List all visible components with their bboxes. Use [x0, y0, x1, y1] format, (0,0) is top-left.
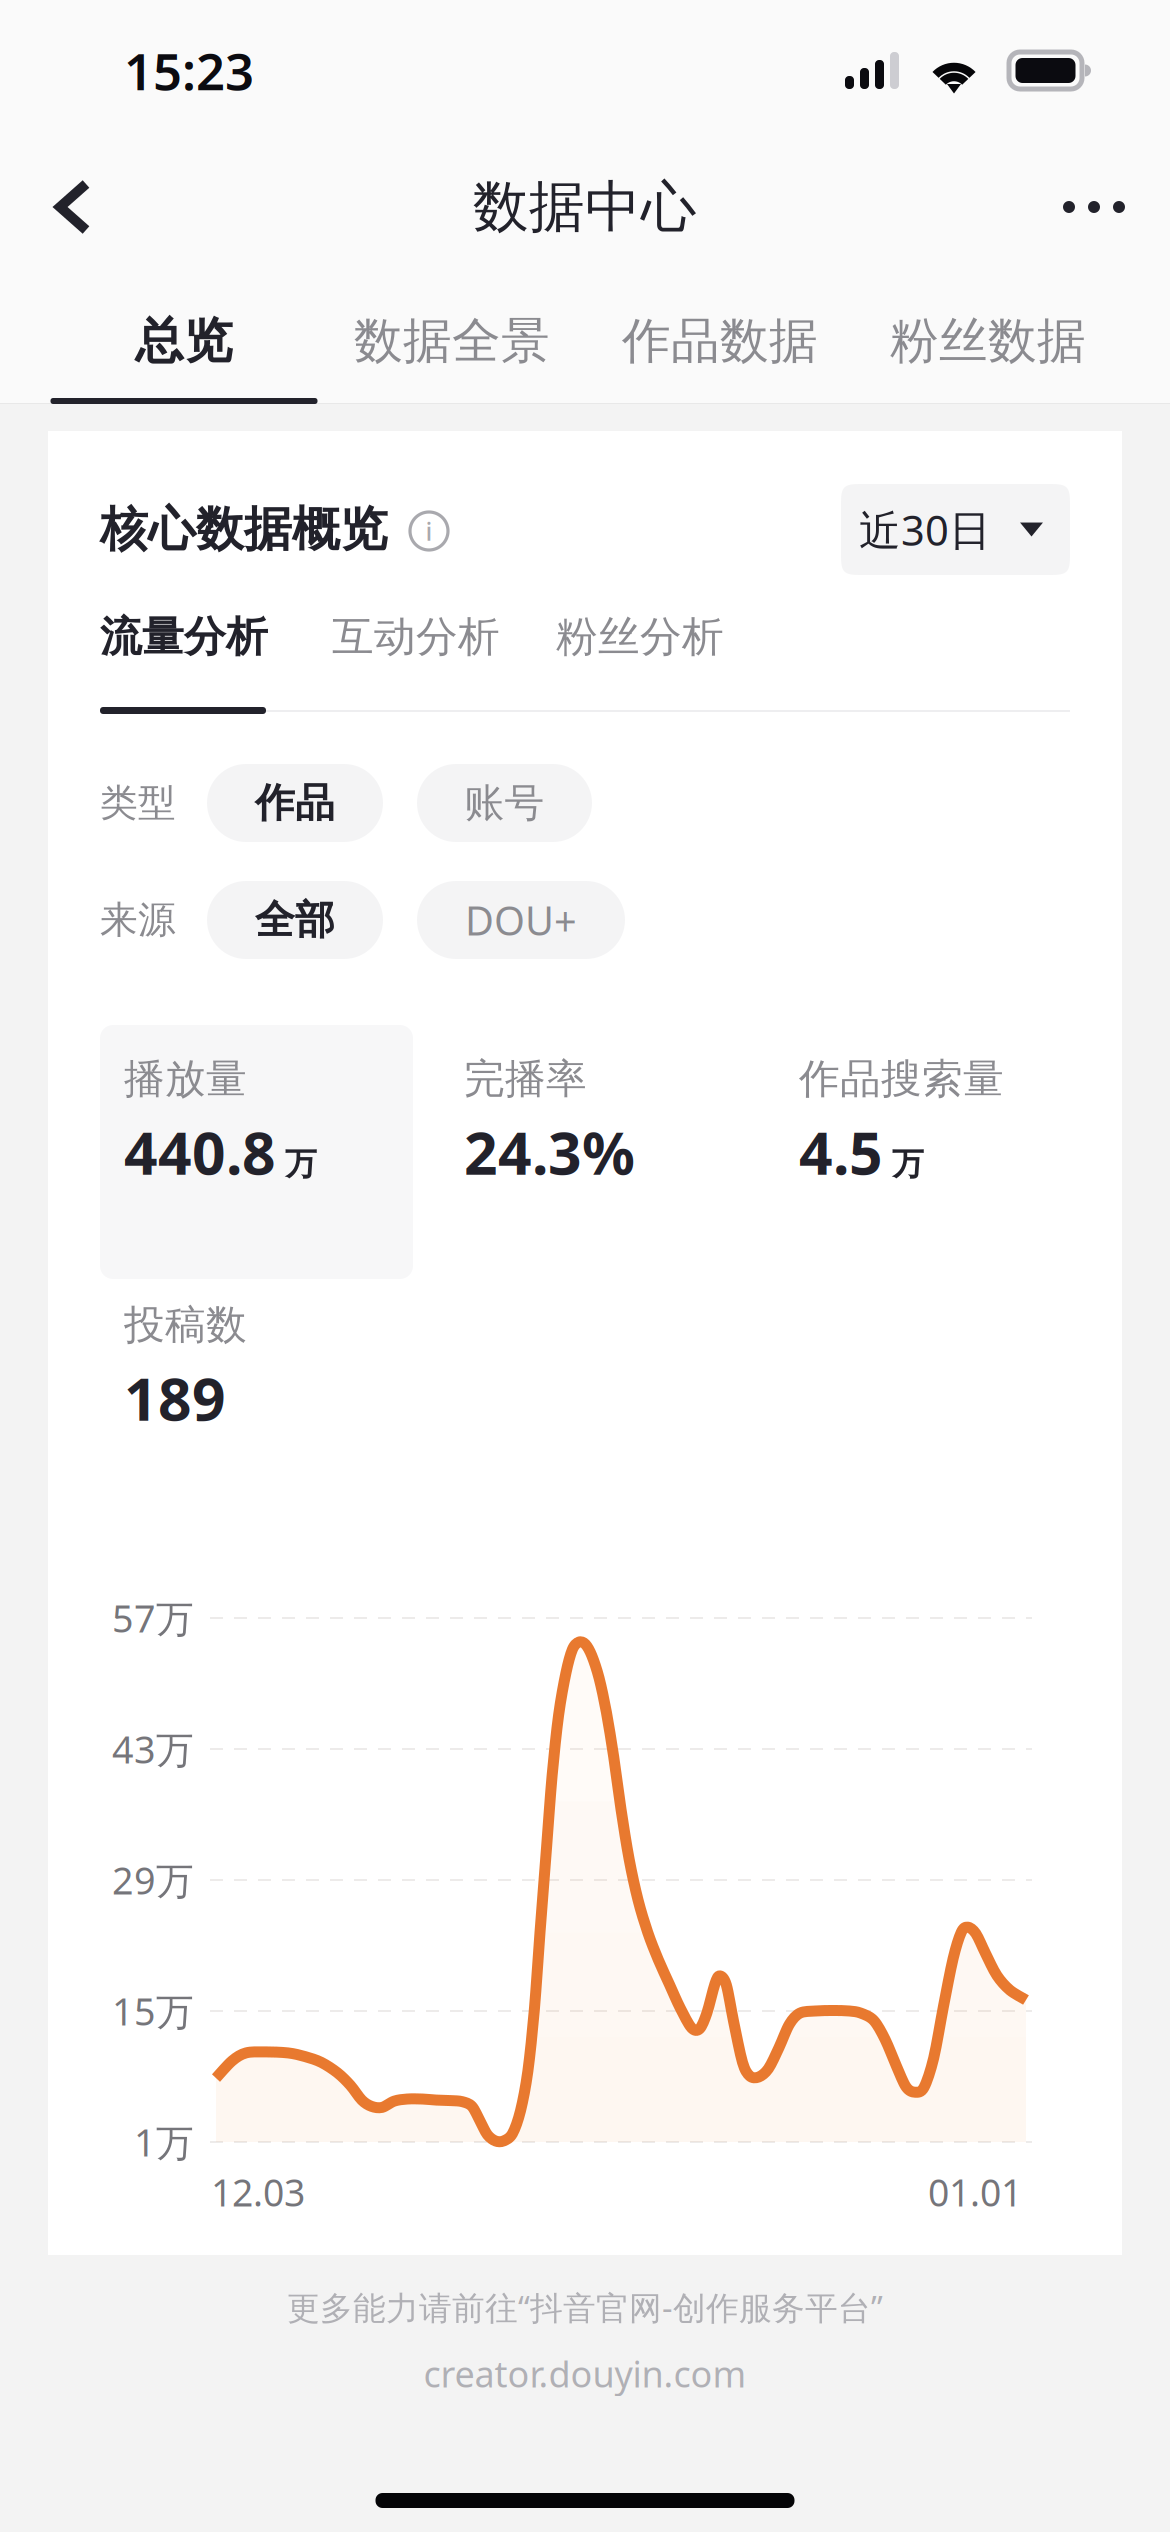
staticText: 近30日: [859, 501, 991, 558]
staticText: 互动分析: [332, 611, 500, 663]
staticText: 12.03: [211, 2167, 305, 2217]
staticText: 15:23: [124, 37, 254, 104]
button[interactable]: 粉丝分析: [556, 608, 724, 666]
staticText: creator.douyin.com: [423, 2350, 746, 2397]
staticText: 流量分析: [100, 611, 268, 663]
staticText: 核心数据概览: [100, 499, 388, 559]
button[interactable]: More options: [1023, 149, 1165, 265]
button[interactable]: 互动分析: [332, 608, 500, 666]
button[interactable]: 全部: [207, 881, 383, 959]
staticText: 播放量: [124, 1053, 247, 1105]
staticText: 440.8: [124, 1113, 276, 1191]
staticText: 作品: [255, 778, 335, 828]
staticText: 万: [285, 1144, 317, 1184]
staticText: 更多能力请前往“抖音官网-创作服务平台”: [287, 2285, 883, 2330]
staticText: 数据全景: [354, 310, 550, 372]
staticText: 29万: [112, 1854, 194, 1906]
staticText: 01.01: [928, 2167, 1022, 2217]
staticText: 15万: [112, 1985, 194, 2037]
button[interactable]: 粉丝数据: [854, 273, 1122, 404]
staticText: 作品搜索量: [799, 1053, 1004, 1105]
staticText: 189: [124, 1359, 226, 1437]
button[interactable]: Back: [20, 147, 126, 267]
staticText: 57万: [112, 1592, 194, 1644]
staticText: 完播率: [464, 1053, 587, 1105]
staticText: 作品数据: [622, 310, 818, 372]
staticText: 43万: [112, 1723, 194, 1775]
staticText: DOU+: [465, 893, 577, 947]
staticText: 4.5: [799, 1113, 883, 1191]
button[interactable]: DOU+: [417, 881, 625, 959]
staticText: 投稿数: [124, 1299, 247, 1351]
staticText: 类型: [100, 779, 176, 827]
button[interactable]: 作品: [207, 764, 383, 842]
button[interactable]: About core data overview: [388, 509, 448, 550]
staticText: i: [425, 514, 432, 548]
button[interactable]: 作品数据: [586, 273, 854, 404]
staticText: 总览: [135, 310, 233, 372]
staticText: 数据中心: [473, 172, 697, 242]
staticText: 全部: [255, 895, 335, 945]
button[interactable]: 流量分析: [100, 608, 268, 666]
button[interactable]: 总览: [50, 273, 318, 404]
button[interactable]: 账号: [417, 764, 592, 842]
staticText: 1万: [134, 2116, 194, 2168]
staticText: 粉丝数据: [890, 310, 1086, 372]
staticText: 来源: [100, 896, 176, 944]
staticText: 万: [892, 1144, 924, 1184]
staticText: 24.3%: [464, 1113, 635, 1191]
button[interactable]: 数据全景: [318, 273, 586, 404]
button[interactable]: 近30日: [841, 484, 1070, 575]
staticText: 粉丝分析: [556, 611, 724, 663]
staticText: 账号: [464, 778, 544, 828]
